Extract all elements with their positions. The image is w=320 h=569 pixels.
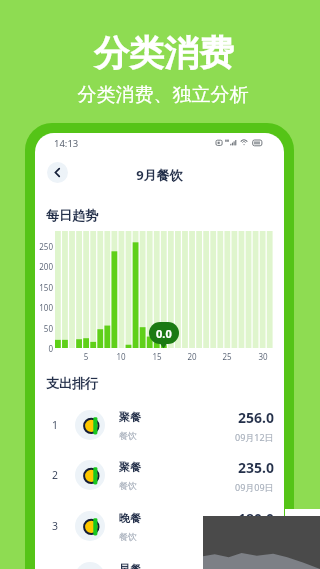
staticText: 餐饮 [119, 480, 137, 491]
staticText: 50 [36, 323, 53, 334]
staticText: 15 [148, 351, 166, 362]
staticText: 09月09日 [235, 481, 274, 493]
staticText: 256.0 [238, 408, 274, 427]
staticText: 5 [77, 351, 95, 362]
staticText: 14:13 [54, 137, 79, 150]
staticText: 0 [36, 343, 53, 354]
staticText: 0.0 [156, 326, 172, 341]
staticText: 20 [183, 351, 201, 362]
staticText: 1 [48, 418, 62, 432]
staticText: 聚餐 [119, 410, 141, 424]
staticText: 分类消费、独立分析 [3, 83, 320, 107]
staticText: 25 [218, 351, 236, 362]
staticText: 200 [36, 261, 53, 272]
staticText: 09月12日 [235, 431, 274, 443]
staticText: 餐饮 [119, 531, 137, 542]
staticText: 每日趋势 [46, 207, 98, 223]
button[interactable]: Back [47, 162, 68, 183]
staticText: 9月餐饮 [35, 166, 284, 184]
staticText: 250 [36, 241, 53, 252]
staticText: 晚餐 [119, 511, 141, 525]
staticText: 180.0 [238, 509, 274, 528]
staticText: 聚餐 [119, 460, 141, 474]
staticText: 分类消费 [4, 31, 320, 75]
staticText: 10 [112, 351, 130, 362]
button[interactable]: 4 [35, 552, 284, 569]
staticText: 3 [48, 519, 62, 533]
staticText: 30 [254, 351, 272, 362]
staticText: 支出排行 [46, 375, 98, 391]
staticText: 235.0 [238, 458, 274, 477]
staticText: 早餐 [119, 562, 141, 569]
button[interactable]: 3 [35, 501, 284, 551]
button[interactable]: 2 [35, 450, 284, 500]
staticText: 150 [36, 282, 53, 293]
button[interactable]: 1 [35, 400, 284, 450]
staticText: 餐饮 [119, 430, 137, 441]
staticText: 2 [48, 468, 62, 482]
staticText: 100 [36, 302, 53, 313]
